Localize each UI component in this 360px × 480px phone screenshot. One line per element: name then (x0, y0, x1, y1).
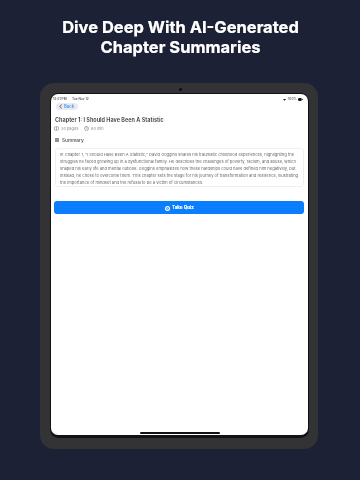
button[interactable]: Back (56, 103, 78, 110)
staticText: Summary (62, 137, 84, 143)
staticText: Tue Nov 12 (72, 97, 89, 101)
staticText: 12:01 PM (53, 97, 67, 101)
staticText: 30 pages (61, 126, 79, 131)
staticText: 60 min (91, 126, 104, 131)
staticText: In Chapter 1, "I Should Have Been A Stat… (60, 152, 299, 185)
button[interactable]: Take Quiz (54, 201, 304, 214)
staticText: Chapter 1: I Should Have Been A Statisti… (55, 117, 164, 124)
staticText: Take Quiz (172, 205, 194, 211)
staticText: Dive Deep With AI-Generated Chapter Summ… (62, 17, 299, 57)
staticText: 100% (288, 97, 297, 101)
staticText: Back (64, 104, 75, 109)
